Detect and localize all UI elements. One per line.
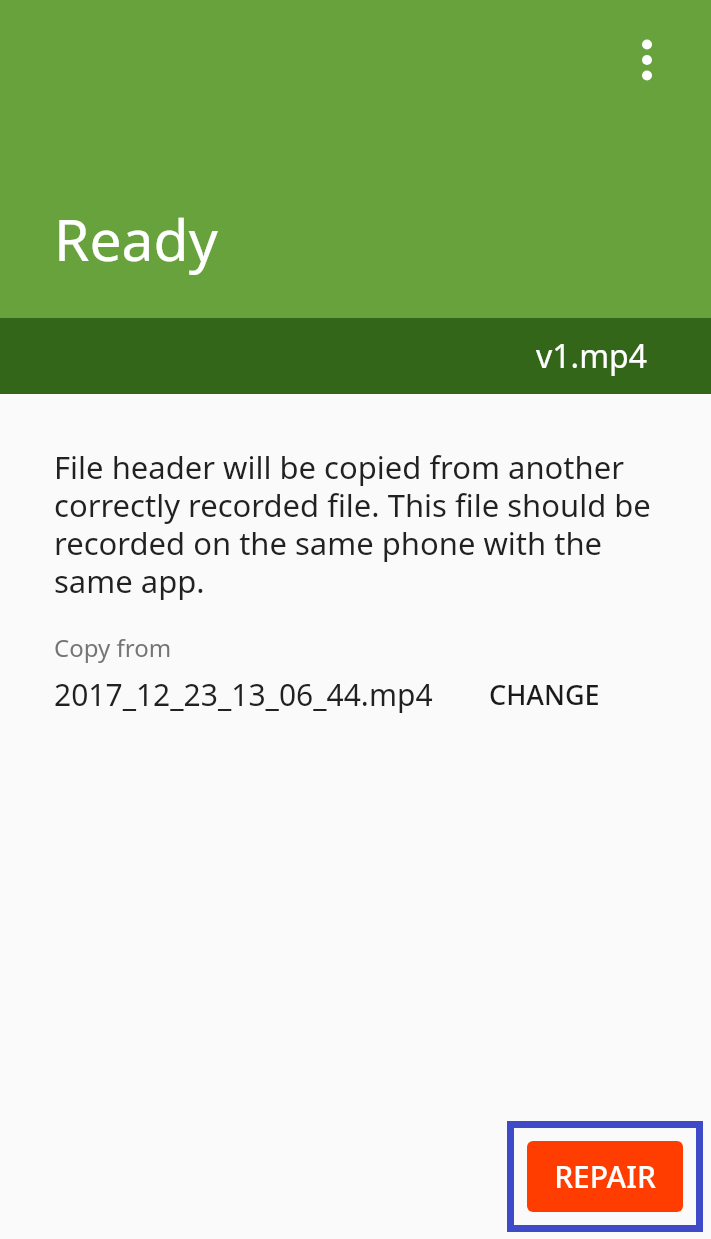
staticText: Copy from bbox=[54, 631, 172, 664]
button[interactable]: CHANGE bbox=[487, 672, 602, 717]
staticText: CHANGE bbox=[489, 676, 600, 713]
staticText: 2017_12_23_13_06_44.mp4 bbox=[54, 674, 433, 715]
button[interactable]: More options bbox=[603, 16, 691, 104]
button[interactable]: REPAIR bbox=[527, 1141, 683, 1212]
staticText: REPAIR bbox=[554, 1156, 656, 1197]
staticText: File header will be copied from another … bbox=[54, 446, 651, 602]
staticText: Ready bbox=[54, 200, 218, 278]
staticText: v1.mp4 bbox=[536, 334, 648, 378]
